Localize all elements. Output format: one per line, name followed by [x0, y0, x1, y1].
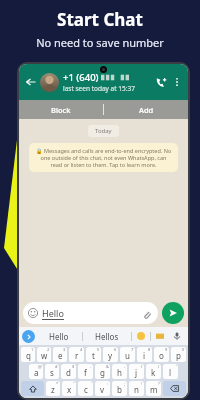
staticText: Hello — [42, 307, 64, 319]
staticText: - — [124, 364, 126, 369]
button[interactable]: Backspace — [163, 381, 186, 396]
button[interactable]: Expand suggestions — [22, 330, 35, 343]
staticText: ' — [176, 364, 177, 369]
staticText: y — [108, 350, 113, 361]
staticText: last seen today at 15:37 — [63, 84, 135, 93]
staticText: g — [100, 367, 105, 378]
button[interactable]: a — [29, 364, 43, 379]
staticText: ! — [141, 381, 143, 386]
button[interactable]: e — [53, 347, 67, 362]
staticText: q — [26, 350, 31, 361]
staticText: No need to save number — [36, 35, 164, 50]
staticText: ( — [141, 364, 143, 369]
staticText: & — [106, 364, 109, 369]
button[interactable]: w — [37, 347, 51, 362]
button[interactable] — [132, 327, 150, 345]
staticText: * — [56, 381, 59, 386]
button[interactable]: g — [95, 364, 110, 379]
staticText: 0 — [182, 347, 185, 352]
staticText: o — [159, 350, 164, 361]
button[interactable]: d — [61, 364, 76, 379]
staticText: c — [84, 384, 88, 395]
button[interactable]: y — [103, 347, 118, 362]
staticText: " — [73, 381, 75, 386]
staticText: z — [51, 384, 55, 395]
button[interactable]: x — [62, 381, 76, 396]
staticText: Hellos — [95, 331, 119, 342]
button[interactable]: m — [146, 381, 161, 396]
button[interactable]: q — [21, 347, 35, 362]
staticText: i — [143, 350, 146, 361]
staticText: 3 — [63, 347, 66, 352]
staticText: l — [169, 367, 172, 378]
staticText: 1 — [31, 347, 34, 352]
staticText: p — [176, 350, 181, 361]
staticText: h — [117, 367, 122, 378]
staticText: Start Chat — [57, 8, 143, 31]
button[interactable]: Send — [162, 302, 184, 324]
staticText: w — [41, 350, 48, 361]
button[interactable]: u — [120, 347, 135, 362]
button[interactable]: Video call — [152, 73, 170, 91]
button[interactable]: Add — [104, 100, 188, 119]
staticText: s — [50, 367, 54, 378]
staticText: a — [34, 367, 39, 378]
button[interactable]: r — [69, 347, 84, 362]
staticText: ) — [158, 364, 160, 369]
button[interactable]: Attach — [140, 307, 153, 320]
button[interactable]: n — [129, 381, 144, 396]
button[interactable]: Hellos — [83, 327, 131, 345]
staticText: Hello — [49, 331, 69, 342]
staticText: e — [58, 350, 63, 361]
staticText: 8 — [148, 347, 151, 352]
staticText: 7 — [131, 347, 134, 352]
button[interactable]: j — [129, 364, 144, 379]
staticText: Add — [139, 105, 154, 115]
staticText: n — [134, 384, 139, 395]
button[interactable]: c — [78, 381, 93, 396]
staticText: 2 — [47, 347, 50, 352]
staticText: x — [67, 384, 72, 395]
button[interactable]: Hello — [35, 327, 82, 345]
button[interactable] — [151, 327, 169, 345]
staticText: 9 — [165, 347, 168, 352]
button[interactable]: More options — [170, 75, 184, 89]
staticText: r — [75, 350, 79, 361]
button[interactable]: Shift — [21, 381, 44, 396]
button[interactable]: Back — [23, 74, 39, 90]
staticText: k — [151, 367, 156, 378]
staticText: $ — [72, 364, 75, 369]
staticText: m — [150, 384, 158, 395]
staticText: t — [92, 350, 95, 361]
button[interactable]: z — [46, 381, 60, 396]
button[interactable]: l — [163, 364, 178, 379]
button[interactable]: p — [171, 347, 186, 362]
button[interactable]: Block — [19, 100, 103, 119]
button[interactable]: b — [112, 381, 127, 396]
staticText: ; — [124, 381, 126, 386]
staticText: b — [117, 384, 122, 395]
staticText: - — [90, 364, 92, 369]
staticText: j — [135, 367, 138, 378]
staticText: ' — [91, 381, 92, 386]
button[interactable]: t — [86, 347, 101, 362]
staticText: v — [100, 384, 105, 395]
button[interactable]: s — [45, 364, 59, 379]
button[interactable]: f — [78, 364, 93, 379]
button[interactable]: 🔒 Messages and calls are end-to-end encr… — [29, 143, 178, 172]
staticText: Today — [95, 127, 112, 135]
button[interactable]: i — [137, 347, 152, 362]
staticText: Block — [51, 105, 71, 115]
staticText: # — [55, 364, 58, 369]
staticText: +1 (640) — [63, 71, 99, 84]
staticText: 5 — [97, 347, 100, 352]
button[interactable]: Voice input — [169, 327, 185, 345]
button[interactable]: k — [146, 364, 161, 379]
button[interactable]: o — [154, 347, 169, 362]
button[interactable]: h — [112, 364, 127, 379]
button[interactable]: Hello — [23, 302, 158, 324]
staticText: ? — [158, 381, 160, 386]
staticText: d — [66, 367, 71, 378]
button[interactable]: v — [95, 381, 110, 396]
staticText: 6 — [114, 347, 117, 352]
